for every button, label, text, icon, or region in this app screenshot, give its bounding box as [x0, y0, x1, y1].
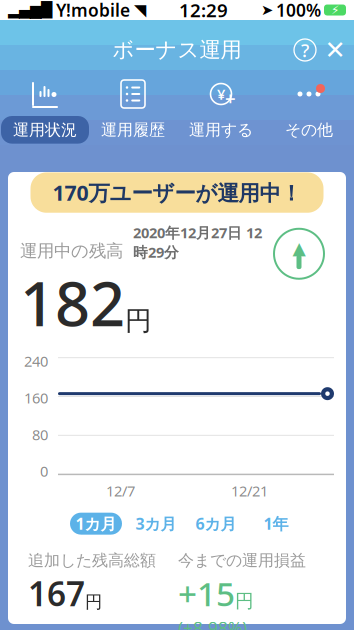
staticText: ¥: [217, 84, 225, 104]
staticText: +15: [178, 571, 235, 616]
button[interactable]: 閉じる: [322, 37, 354, 63]
staticText: 0: [40, 461, 48, 481]
staticText: ▂▄▆█: [8, 2, 52, 18]
staticText: 円: [235, 590, 254, 612]
staticText: 100%: [276, 0, 321, 21]
staticText: 80: [32, 425, 48, 444]
staticText: その他: [285, 120, 333, 140]
staticText: 追加した残高総額: [28, 551, 156, 570]
staticText: +: [225, 86, 236, 110]
staticText: ➤: [261, 2, 273, 18]
button[interactable]: ¥: [177, 78, 265, 144]
staticText: ◥: [134, 1, 146, 19]
staticText: 1年: [263, 513, 288, 534]
staticText: 170万ユーザーが運用中！: [52, 178, 301, 207]
button[interactable]: 3カ月: [126, 513, 186, 535]
staticText: 円: [85, 591, 102, 613]
button[interactable]: 運用状況: [1, 78, 89, 144]
button[interactable]: 1カ月: [66, 513, 126, 535]
staticText: 運用状況: [13, 120, 77, 140]
button[interactable]: 運用履歴: [89, 78, 177, 144]
staticText: ボーナス運用: [112, 37, 241, 63]
staticText: ⚡︎: [331, 3, 339, 17]
staticText: ?: [301, 38, 309, 62]
staticText: 運用中の残高: [20, 240, 123, 262]
button[interactable]: 6カ月: [186, 513, 246, 535]
staticText: ✕: [324, 36, 345, 64]
staticText: 12/7: [106, 481, 135, 501]
staticText: 運用する: [189, 120, 253, 140]
staticText: 1カ月: [75, 513, 116, 534]
staticText: 今までの運用損益: [178, 551, 306, 570]
staticText: 182: [20, 262, 125, 343]
button[interactable]: ヘルプ: [288, 33, 322, 67]
staticText: 6カ月: [195, 513, 236, 534]
staticText: ▲: [292, 238, 305, 258]
staticText: Y!mobile: [56, 0, 130, 21]
staticText: 240: [24, 351, 48, 371]
staticText: 167: [28, 571, 85, 616]
staticText: 12/21: [231, 481, 268, 501]
button[interactable]: その他: [265, 78, 353, 144]
staticText: (+8.98%): [178, 617, 247, 630]
staticText: 160: [24, 388, 48, 408]
staticText: 円: [125, 304, 152, 337]
staticText: 3カ月: [135, 513, 176, 534]
button[interactable]: 1年: [246, 513, 306, 535]
staticText: 2020年12月27日 12時29分: [133, 223, 262, 262]
staticText: 12:29: [179, 0, 228, 22]
staticText: 運用履歴: [101, 120, 165, 140]
